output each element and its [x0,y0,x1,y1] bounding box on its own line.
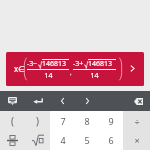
staticText: 4 [60,134,66,146]
button[interactable]: 6 [99,130,123,150]
staticText: 5 [84,134,90,146]
button[interactable]: Hide keyboard [0,91,25,111]
staticText: 14 [44,71,53,81]
button[interactable]: Enter [25,91,50,111]
button[interactable]: 9 [99,111,123,130]
staticText: ÷ [134,115,140,127]
staticText: 8 [84,115,90,127]
button[interactable]: Previous [50,91,75,111]
button[interactable]: ( [0,111,25,130]
staticText: 146813 [42,59,67,69]
button[interactable]: × [123,130,150,150]
button[interactable] [25,130,50,150]
staticText: -3+ [73,59,84,69]
staticText: ( [11,114,14,128]
button[interactable]: Backspace [126,91,150,111]
button[interactable]: 4 [50,130,75,150]
button[interactable]: 5 [75,130,99,150]
staticText: 14 [90,71,99,81]
button[interactable]: 7 [50,111,75,130]
staticText: , [70,69,72,77]
staticText: ) [36,114,39,128]
staticText: × [134,134,140,146]
staticText: 9 [108,115,114,127]
button[interactable]: ÷ [123,111,150,130]
staticText: x∈ [14,63,26,74]
button[interactable]: Next [75,91,100,111]
button[interactable]: ) [25,111,50,130]
staticText: 6 [108,134,114,146]
staticText: 7 [60,115,66,127]
button[interactable] [0,130,25,150]
staticText: -3− [27,59,38,69]
staticText: 146813 [88,59,113,69]
button[interactable]: Show steps [124,60,141,77]
button[interactable]: 8 [75,111,99,130]
button[interactable]: x∈ [6,52,144,86]
